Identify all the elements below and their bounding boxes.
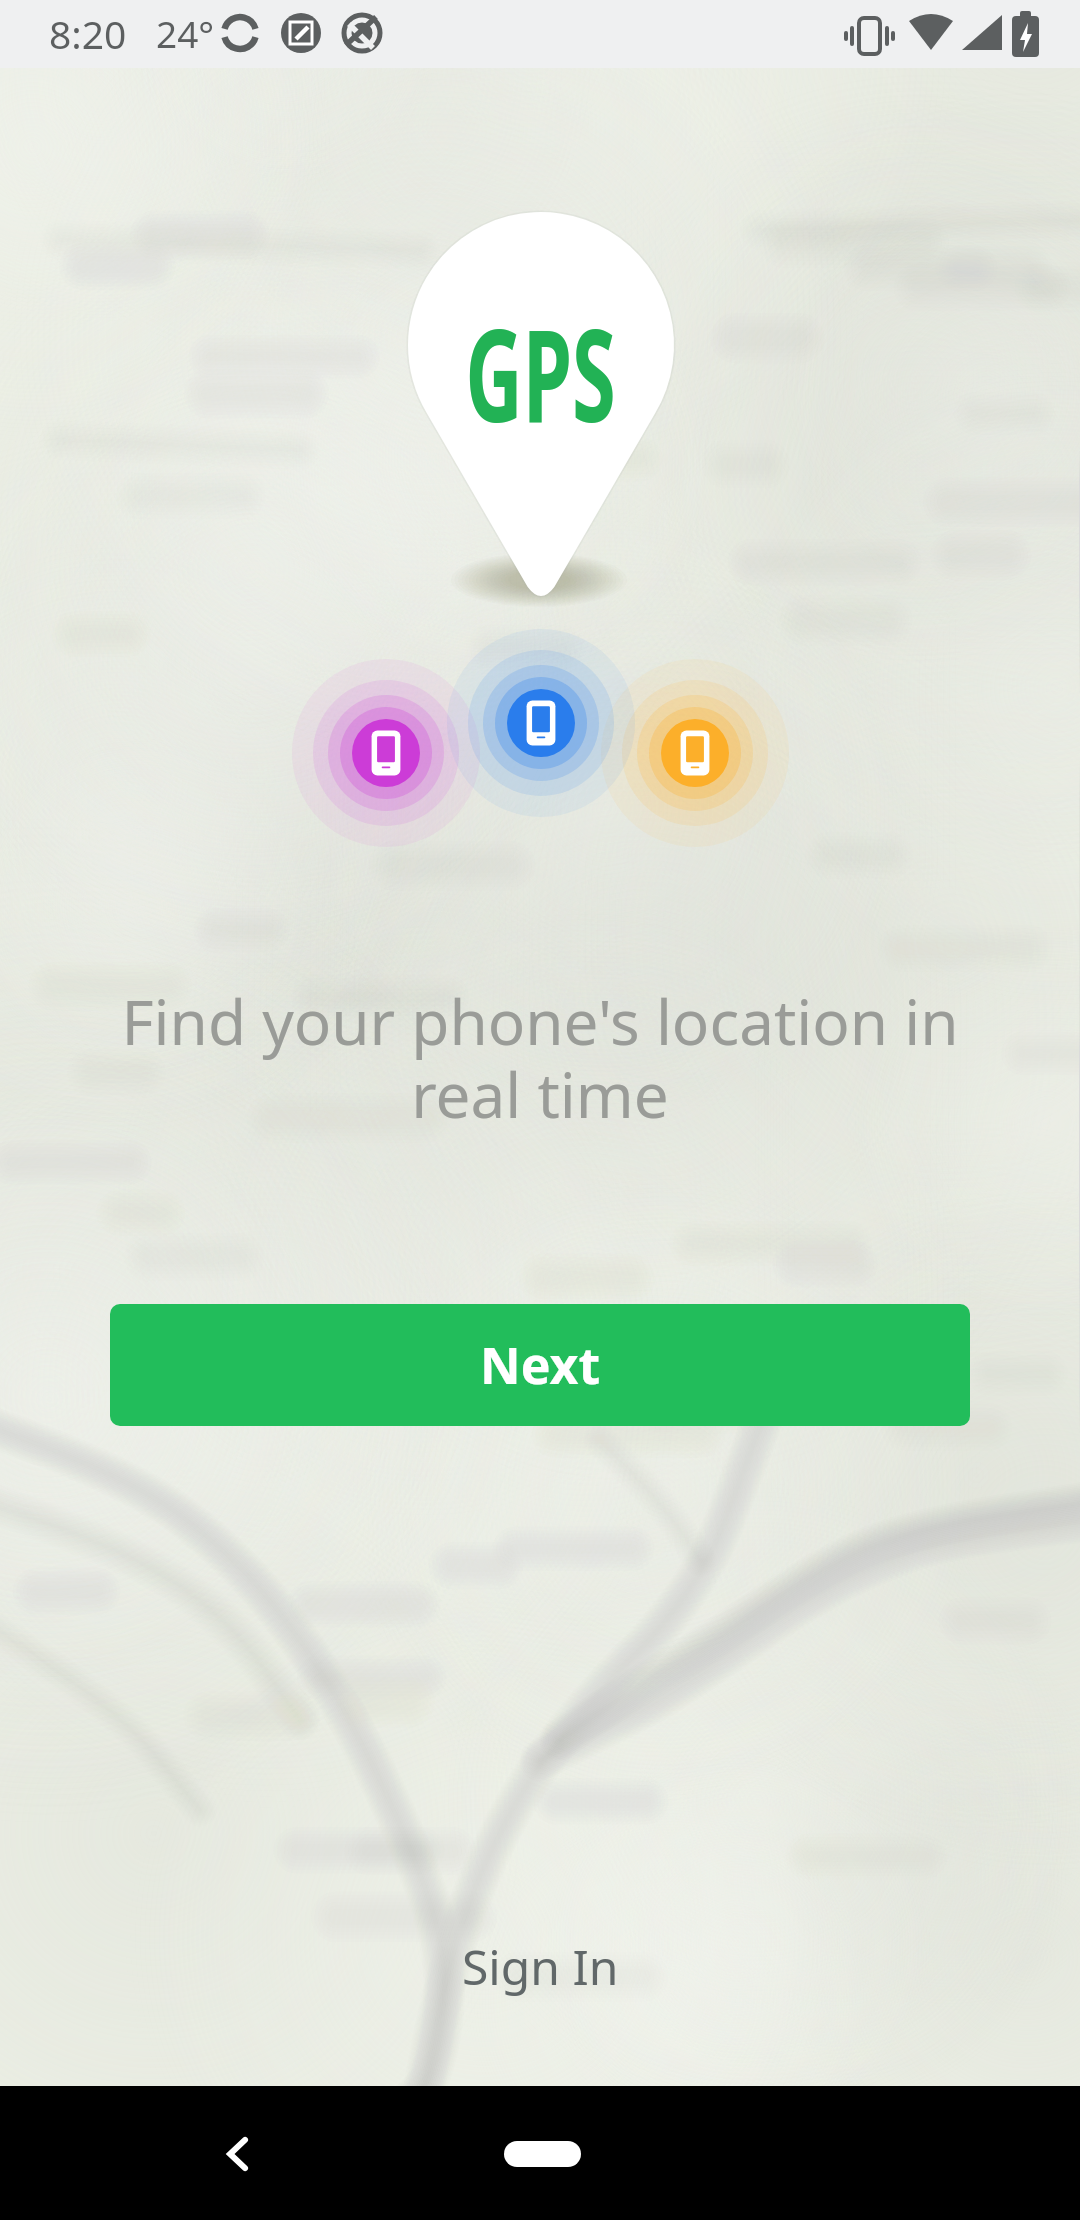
staticText: Sign In <box>462 1934 619 1999</box>
button[interactable]: Back <box>198 2114 278 2194</box>
button[interactable]: Home <box>504 2141 581 2167</box>
staticText: Find your phone's location in real time <box>90 979 990 1136</box>
staticText: Next <box>480 1331 601 1399</box>
staticText: 24° <box>156 8 215 58</box>
button[interactable]: Sign In <box>390 1916 690 2016</box>
staticText: 8:20 <box>49 7 127 60</box>
button[interactable]: Next <box>110 1304 970 1426</box>
staticText: GPS <box>465 285 616 459</box>
